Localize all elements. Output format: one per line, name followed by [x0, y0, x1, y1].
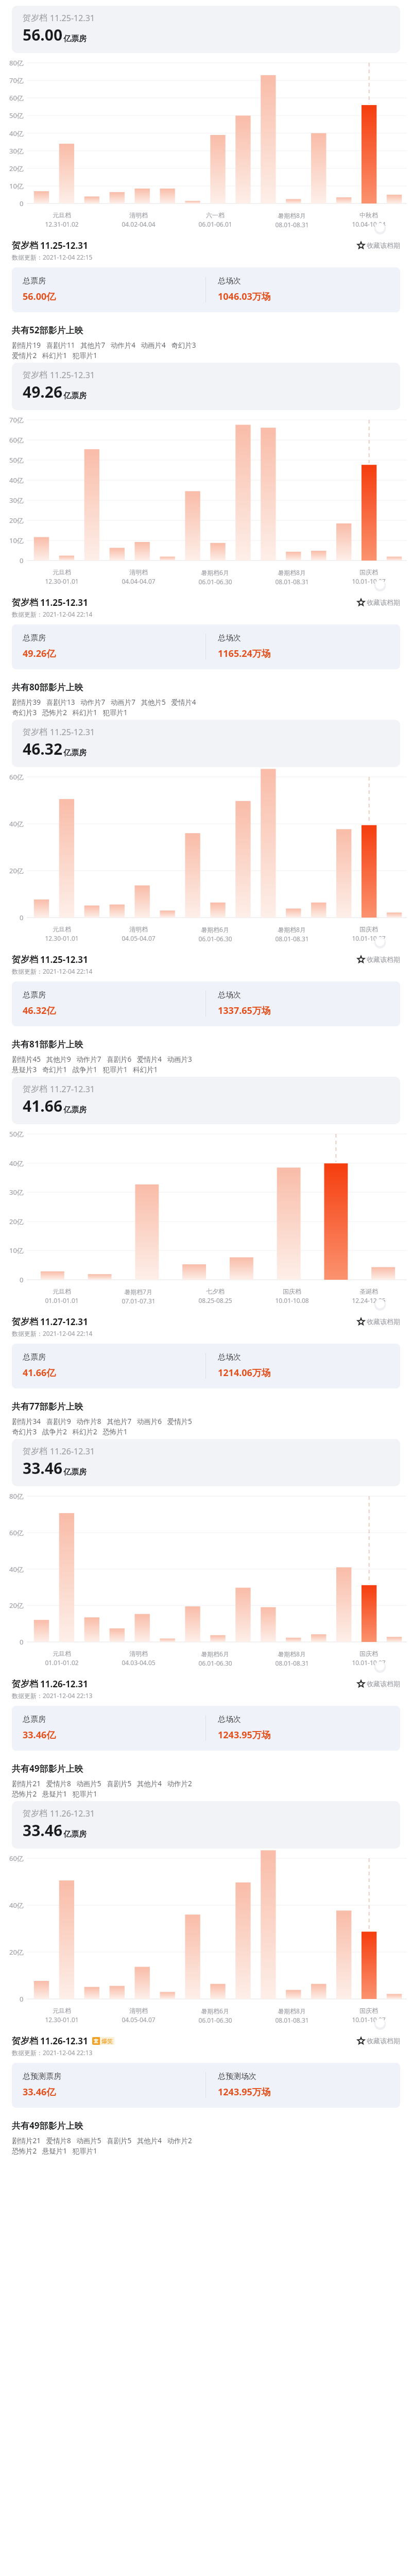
staticText: 30亿: [9, 146, 24, 156]
button[interactable]: 收藏该档期: [356, 239, 402, 251]
staticText: 11.26-12.31: [50, 1446, 95, 1457]
other: 收藏该档期: [357, 242, 365, 249]
button[interactable]: 贺岁档: [12, 363, 400, 410]
staticText: 剧情片39 喜剧片13 动作片7 动画片7 其他片5 爱情片4: [12, 698, 196, 707]
staticText: 亿票房: [63, 748, 87, 758]
staticText: 亿票房: [63, 34, 87, 44]
staticText: 恐怖片2 悬疑片1 犯罪片1: [12, 2146, 97, 2156]
button[interactable]: 宜: [92, 2037, 114, 2045]
staticText: 04.05-04.07: [122, 934, 156, 942]
staticText: 12.30-01.01: [45, 2015, 79, 2024]
button[interactable]: 总票房: [12, 267, 400, 312]
button[interactable]: 贺岁档: [12, 1801, 400, 1849]
button[interactable]: 总票房: [12, 1344, 400, 1388]
staticText: 10亿: [9, 181, 24, 191]
staticText: 33.46: [23, 1458, 63, 1479]
staticText: 贺岁档: [12, 1679, 38, 1689]
button[interactable]: 收藏该档期: [356, 596, 402, 608]
button[interactable]: 收藏该档期: [356, 1315, 402, 1328]
staticText: 总场次: [218, 990, 241, 1000]
staticText: 50亿: [9, 111, 24, 120]
staticText: 04.03-04.05: [122, 1658, 156, 1667]
other: 收藏该档期: [357, 1680, 365, 1687]
button[interactable]: 总票房: [12, 1706, 400, 1751]
staticText: 剧情片21 爱情片8 动画片5 喜剧片5 其他片4 动作片2: [12, 2136, 192, 2145]
staticText: 12.31-01.02: [45, 220, 79, 228]
staticText: 悬疑片3 奇幻片1 战争片1 犯罪片1 科幻片1: [12, 1065, 158, 1074]
staticText: 10.01-10.08: [275, 1296, 309, 1304]
staticText: 清明档: [129, 211, 148, 219]
staticText: 1243.95万场: [218, 2086, 271, 2098]
staticText: 贺岁档: [12, 597, 38, 608]
staticText: 暑期档7月: [124, 1287, 152, 1296]
staticText: 贺岁档: [12, 2036, 38, 2046]
staticText: 20亿: [9, 1601, 24, 1610]
staticText: 10.01-10.07: [352, 2015, 386, 2024]
staticText: 数据更新：2021-12-04 22:14: [12, 967, 93, 975]
staticText: 08.01-08.31: [275, 1659, 309, 1667]
staticText: 暑期档8月: [278, 925, 306, 934]
staticText: 11.25-12.31: [50, 726, 95, 738]
staticText: 56.00: [23, 24, 63, 45]
staticText: 亿票房: [63, 1105, 87, 1115]
staticText: 12.30-01.01: [45, 577, 79, 585]
staticText: 元旦档: [53, 568, 71, 576]
staticText: 08.01-08.31: [275, 2016, 309, 2024]
staticText: 33.46亿: [23, 1728, 56, 1741]
staticText: 奇幻片3 战争片2 科幻片2 恐怖片1: [12, 1427, 128, 1436]
button[interactable]: 收藏该档期: [356, 2035, 402, 2047]
staticText: 20亿: [9, 164, 24, 173]
staticText: 40亿: [9, 819, 24, 828]
staticText: 共有81部影片上映: [12, 1038, 83, 1050]
staticText: 60亿: [9, 93, 24, 103]
staticText: 10.04-10.04: [352, 220, 386, 228]
button[interactable]: 收藏该档期: [356, 953, 402, 965]
staticText: 总场次: [218, 276, 241, 286]
staticText: 总票房: [23, 633, 46, 643]
staticText: 01.01-01.02: [45, 1658, 79, 1667]
staticText: 40亿: [9, 1159, 24, 1168]
button[interactable]: 贺岁档: [12, 1439, 400, 1486]
other: 收藏该档期: [357, 956, 365, 963]
staticText: 共有49部影片上映: [12, 2120, 83, 2131]
staticText: 04.05-04.07: [122, 2015, 156, 2024]
staticText: 08.01-08.31: [275, 221, 309, 229]
staticText: 中秋档: [359, 211, 378, 219]
staticText: 11.25-12.31: [40, 954, 88, 965]
staticText: 暑期档6月: [201, 1650, 229, 1658]
button[interactable]: 收藏该档期: [356, 1677, 402, 1690]
staticText: 清明档: [129, 2007, 148, 2014]
staticText: 20亿: [9, 1217, 24, 1226]
staticText: 06.01-06.30: [198, 1659, 232, 1667]
staticText: 收藏该档期: [367, 1680, 400, 1688]
staticText: 亿票房: [63, 1829, 87, 1839]
staticText: 元旦档: [53, 2007, 71, 2014]
button[interactable]: 总票房: [12, 981, 400, 1026]
staticText: 收藏该档期: [367, 598, 400, 606]
staticText: 1243.95万场: [218, 1728, 271, 1741]
staticText: 恐怖片2 悬疑片1 犯罪片1: [12, 1789, 97, 1799]
staticText: 元旦档: [53, 1287, 71, 1295]
staticText: 40亿: [9, 1565, 24, 1574]
button[interactable]: 总预测票房: [12, 2063, 400, 2108]
button[interactable]: 贺岁档: [12, 1077, 400, 1124]
staticText: 暑期档6月: [201, 925, 229, 934]
staticText: 41.66亿: [23, 1366, 56, 1379]
staticText: 暑期档8月: [278, 568, 306, 577]
staticText: 暑期档8月: [278, 2007, 306, 2015]
staticText: 数据更新：2021-12-04 22:14: [12, 610, 93, 618]
staticText: 暑期档8月: [278, 211, 306, 219]
staticText: 12.24-12.25: [352, 1296, 386, 1304]
staticText: 剧情片45 其他片9 动作片7 喜剧片6 爱情片4 动画片3: [12, 1055, 192, 1064]
button[interactable]: 贺岁档: [12, 6, 400, 53]
button[interactable]: 总票房: [12, 624, 400, 669]
staticText: 总票房: [23, 276, 46, 286]
staticText: 49.26亿: [23, 647, 56, 660]
staticText: 06.01-06.30: [198, 578, 232, 586]
staticText: 剧情片34 喜剧片9 动作片8 其他片7 动画片6 爱情片5: [12, 1417, 192, 1426]
button[interactable]: 贺岁档: [12, 720, 400, 767]
staticText: 06.01-06.30: [198, 935, 232, 943]
staticText: 1165.24万场: [218, 647, 271, 660]
staticText: 贺岁档: [23, 370, 47, 380]
staticText: 11.25-12.31: [50, 12, 95, 24]
